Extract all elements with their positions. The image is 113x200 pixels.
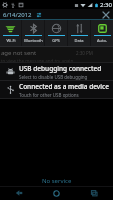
staticText: Bluetooth — [24, 38, 43, 43]
staticText: 2:30 PM — [76, 50, 93, 56]
staticText: to view the message and try again — [1, 58, 74, 62]
button[interactable]: age not sent — [0, 47, 113, 62]
staticText: Auto-Rotate — [91, 38, 113, 43]
button[interactable]: Settings — [35, 11, 43, 19]
staticText: Connected as a media device — [19, 82, 109, 91]
staticText: 6/14/2012 — [3, 11, 32, 19]
button[interactable]: Home — [37, 186, 75, 200]
button[interactable]: Back — [0, 186, 37, 200]
staticText: Wi-Fi — [6, 38, 16, 43]
button[interactable]: Wi-Fi — [0, 20, 21, 46]
staticText: Select to disable USB debugging — [19, 74, 88, 80]
staticText: age not sent — [1, 49, 37, 57]
button[interactable]: Auto-Rotate — [91, 20, 113, 46]
button[interactable]: Connected as a media device — [0, 81, 113, 98]
staticText: USB debugging connected — [19, 64, 102, 73]
button[interactable]: USB debugging connected — [0, 63, 113, 80]
staticText: GPS — [52, 38, 60, 43]
staticText: Touch for other USB options — [19, 92, 79, 98]
button[interactable]: Clear all notifications — [101, 10, 111, 20]
staticText: No service — [42, 177, 72, 185]
staticText: 2:30 — [100, 1, 112, 9]
staticText: Data Switch — [68, 38, 90, 43]
button[interactable]: Data Switch — [68, 20, 90, 46]
button[interactable]: Bluetooth — [22, 20, 44, 46]
button[interactable]: Recent apps — [75, 186, 113, 200]
button[interactable]: GPS — [45, 20, 67, 46]
